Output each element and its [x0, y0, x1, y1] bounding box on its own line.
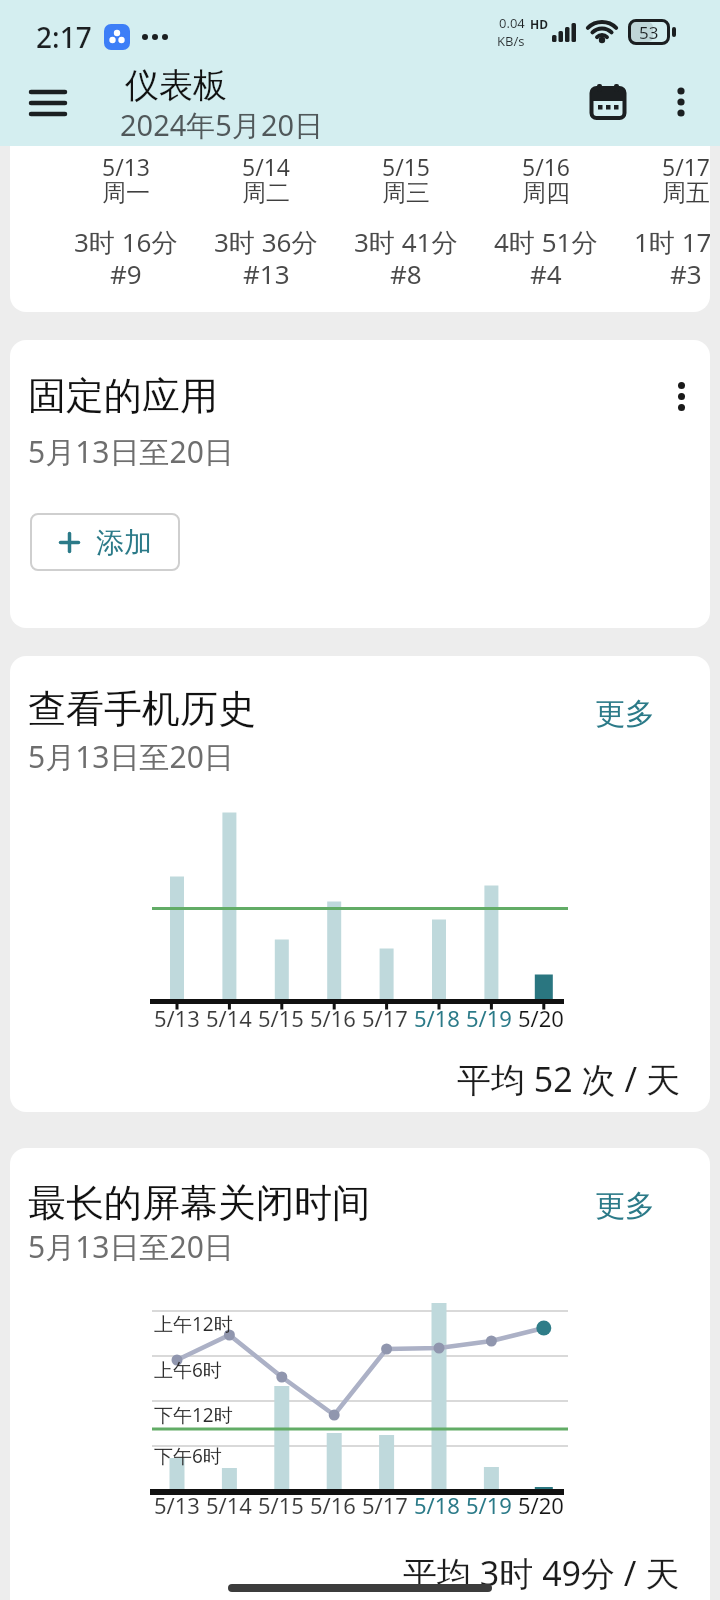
staticText: KB/s	[497, 32, 525, 50]
staticText: 周二	[242, 178, 290, 208]
staticText: 周四	[522, 178, 570, 208]
button[interactable]	[661, 82, 701, 122]
staticText: 5/18	[414, 1003, 460, 1033]
staticText: 固定的应用	[28, 372, 218, 420]
staticText: 3时 16分	[74, 224, 178, 260]
staticText: 4时 51分	[494, 224, 598, 260]
staticText: 周五	[662, 178, 710, 208]
staticText: 5/17	[662, 151, 710, 182]
staticText: 5/17	[362, 1003, 408, 1033]
button[interactable]: 5/15	[336, 151, 476, 182]
staticText: 5/14	[206, 1490, 252, 1520]
button[interactable]: 更多	[595, 1187, 659, 1227]
staticText: 5/15	[258, 1490, 304, 1520]
staticText: 平均 3时 49分 / 天	[403, 1550, 680, 1596]
staticText: 5/20	[518, 1003, 564, 1033]
staticText: 5/13	[154, 1490, 200, 1520]
staticText: 2:17	[36, 18, 92, 56]
staticText: 5/19	[466, 1003, 512, 1033]
staticText: 上午6时	[154, 1357, 222, 1383]
button[interactable]: 5/14	[196, 151, 336, 182]
staticText: 3时 36分	[214, 224, 318, 260]
staticText: 上午12时	[154, 1311, 233, 1337]
button[interactable]: 添加	[30, 513, 180, 571]
staticText: 5/15	[382, 151, 431, 182]
staticText: 查看手机历史	[28, 685, 256, 733]
staticText: 下午6时	[154, 1443, 222, 1469]
staticText: 2024年5月20日	[120, 105, 324, 145]
staticText: 5/16	[310, 1490, 356, 1520]
staticText: 5月13日至20日	[28, 431, 234, 472]
button[interactable]	[22, 77, 74, 129]
staticText: 添加	[96, 525, 152, 560]
staticText: 5/13	[154, 1003, 200, 1033]
staticText: 5/16	[310, 1003, 356, 1033]
staticText: #3	[670, 256, 702, 291]
staticText: #4	[530, 256, 562, 291]
staticText: 1时 17分	[634, 224, 710, 260]
staticText: 5/19	[466, 1490, 512, 1520]
staticText: #9	[110, 256, 142, 291]
button[interactable]	[677, 385, 686, 408]
button[interactable]: 更多	[595, 695, 659, 735]
staticText: 下午12时	[154, 1402, 233, 1428]
staticText: #8	[390, 256, 422, 291]
staticText: 3时 41分	[354, 224, 458, 260]
staticText: 0.04	[499, 14, 525, 32]
staticText: 5/15	[258, 1003, 304, 1033]
staticText: 5/14	[206, 1003, 252, 1033]
staticText: 5/13	[102, 151, 151, 182]
staticText: 更多	[595, 1187, 655, 1225]
staticText: 5/14	[242, 151, 291, 182]
staticText: 平均 52 次 / 天	[457, 1056, 680, 1102]
button[interactable]	[582, 76, 634, 128]
staticText: 更多	[595, 695, 655, 733]
staticText: 5/18	[414, 1490, 460, 1520]
staticText: 5/17	[362, 1490, 408, 1520]
staticText: HD	[530, 16, 548, 32]
staticText: 5/20	[518, 1490, 564, 1520]
button[interactable]: 5/16	[476, 151, 616, 182]
staticText: 周三	[382, 178, 430, 208]
staticText: 53	[639, 21, 659, 44]
button[interactable]: 5/13	[56, 151, 196, 182]
staticText: 最长的屏幕关闭时间	[28, 1179, 370, 1227]
staticText: 5月13日至20日	[28, 736, 234, 777]
staticText: 5/16	[522, 151, 571, 182]
staticText: #13	[243, 256, 290, 291]
staticText: 仪表板	[125, 64, 227, 107]
staticText: 5月13日至20日	[28, 1226, 234, 1267]
button[interactable]: 5/17	[616, 151, 710, 182]
staticText: 周一	[102, 178, 150, 208]
